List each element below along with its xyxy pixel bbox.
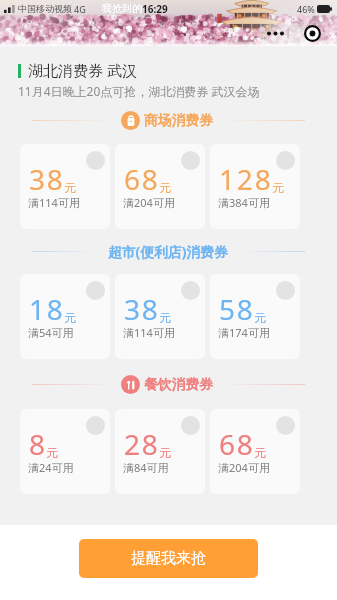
staticText: 提醒我来抢: [131, 549, 206, 568]
staticText: 元: [159, 180, 171, 195]
button[interactable]: 38: [20, 144, 110, 229]
staticText: 4G: [74, 3, 86, 15]
button[interactable]: 128: [210, 144, 300, 229]
staticText: 满114可用: [123, 325, 175, 340]
staticText: 128: [219, 160, 273, 198]
staticText: 满204可用: [218, 460, 270, 475]
staticText: 元: [254, 445, 266, 460]
staticText: 8: [29, 425, 47, 463]
staticText: 湖北消费券 武汉: [28, 60, 137, 80]
button[interactable]: 68: [115, 144, 205, 229]
button[interactable]: 68: [210, 409, 300, 494]
staticText: 58: [219, 290, 255, 328]
staticText: 满84可用: [123, 460, 169, 475]
staticText: 满384可用: [218, 195, 270, 210]
button[interactable]: 8: [20, 409, 110, 494]
staticText: 元: [64, 180, 76, 195]
staticText: 38: [124, 290, 160, 328]
staticText: 元: [46, 445, 58, 460]
staticText: 46%: [297, 3, 315, 15]
staticText: 满24可用: [28, 460, 74, 475]
staticText: 38: [29, 160, 65, 198]
button[interactable]: Close: [304, 25, 321, 42]
staticText: 餐饮消费券: [144, 376, 213, 393]
button[interactable]: 18: [20, 274, 110, 359]
button[interactable]: 58: [210, 274, 300, 359]
staticText: 满204可用: [123, 195, 175, 210]
staticText: 68: [124, 160, 160, 198]
staticText: 68: [219, 425, 255, 463]
staticText: 满114可用: [28, 195, 80, 210]
staticText: 中国移动视频: [18, 3, 72, 14]
staticText: 元: [64, 310, 76, 325]
staticText: 28: [124, 425, 160, 463]
button[interactable]: 28: [115, 409, 205, 494]
staticText: 元: [159, 445, 171, 460]
staticText: 我抢到的: [102, 2, 142, 15]
staticText: 满54可用: [28, 325, 74, 340]
staticText: 元: [254, 310, 266, 325]
button[interactable]: More options: [259, 24, 312, 43]
staticText: 元: [159, 310, 171, 325]
staticText: 商场消费券: [144, 112, 213, 129]
staticText: 超市(便利店)消费券: [108, 242, 228, 261]
staticText: 16:29: [142, 2, 168, 16]
button[interactable]: 38: [115, 274, 205, 359]
staticText: 满174可用: [218, 325, 270, 340]
staticText: 11月4日晚上20点可抢，湖北消费券 武汉会场: [18, 83, 260, 99]
staticText: 元: [272, 180, 284, 195]
staticText: 18: [29, 290, 65, 328]
button[interactable]: 提醒我来抢: [79, 539, 258, 578]
